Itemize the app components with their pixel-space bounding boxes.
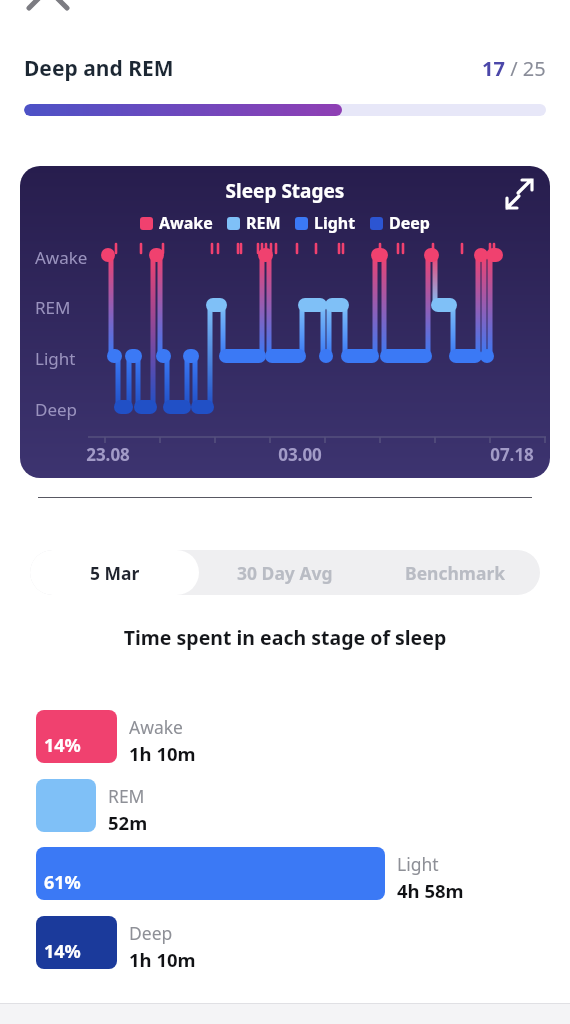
staticText: REM: [246, 212, 281, 234]
staticText: 17: [482, 55, 505, 82]
staticText: 1h 10m: [129, 947, 196, 972]
staticText: Time spent in each stage of sleep: [0, 624, 570, 651]
staticText: 30 Day Avg: [237, 561, 333, 585]
staticText: 4h 58m: [397, 878, 464, 903]
staticText: REM: [108, 784, 145, 808]
button[interactable]: [24, 0, 72, 14]
button[interactable]: 14%: [36, 916, 117, 969]
staticText: / 25: [505, 55, 546, 82]
staticText: 03.00: [272, 443, 328, 466]
button[interactable]: [500, 171, 544, 215]
staticText: REM: [35, 296, 71, 319]
staticText: Benchmark: [405, 561, 506, 585]
staticText: Light: [397, 852, 439, 876]
button[interactable]: Benchmark: [370, 550, 540, 595]
staticText: Sleep Stages: [20, 178, 550, 204]
staticText: Deep: [389, 212, 430, 234]
staticText: 14%: [44, 733, 81, 758]
button[interactable]: 5 Mar: [30, 550, 199, 595]
staticText: 5 Mar: [90, 561, 140, 585]
staticText: Light: [314, 212, 356, 234]
button[interactable]: [36, 779, 96, 832]
staticText: Deep and REM: [24, 54, 174, 83]
staticText: Light: [35, 347, 76, 370]
staticText: 52m: [108, 810, 148, 835]
staticText: 14%: [44, 939, 81, 964]
staticText: Deep: [35, 398, 78, 421]
staticText: 1h 10m: [129, 741, 196, 766]
staticText: Awake: [35, 246, 88, 269]
staticText: Awake: [159, 212, 213, 234]
staticText: Deep: [129, 921, 173, 945]
button[interactable]: 61%: [36, 847, 385, 900]
staticText: 61%: [44, 870, 81, 895]
button[interactable]: 14%: [36, 710, 117, 763]
button[interactable]: 30 Day Avg: [199, 550, 370, 595]
staticText: 07.18: [484, 443, 540, 466]
staticText: 23.08: [80, 443, 136, 466]
staticText: Awake: [129, 715, 183, 739]
